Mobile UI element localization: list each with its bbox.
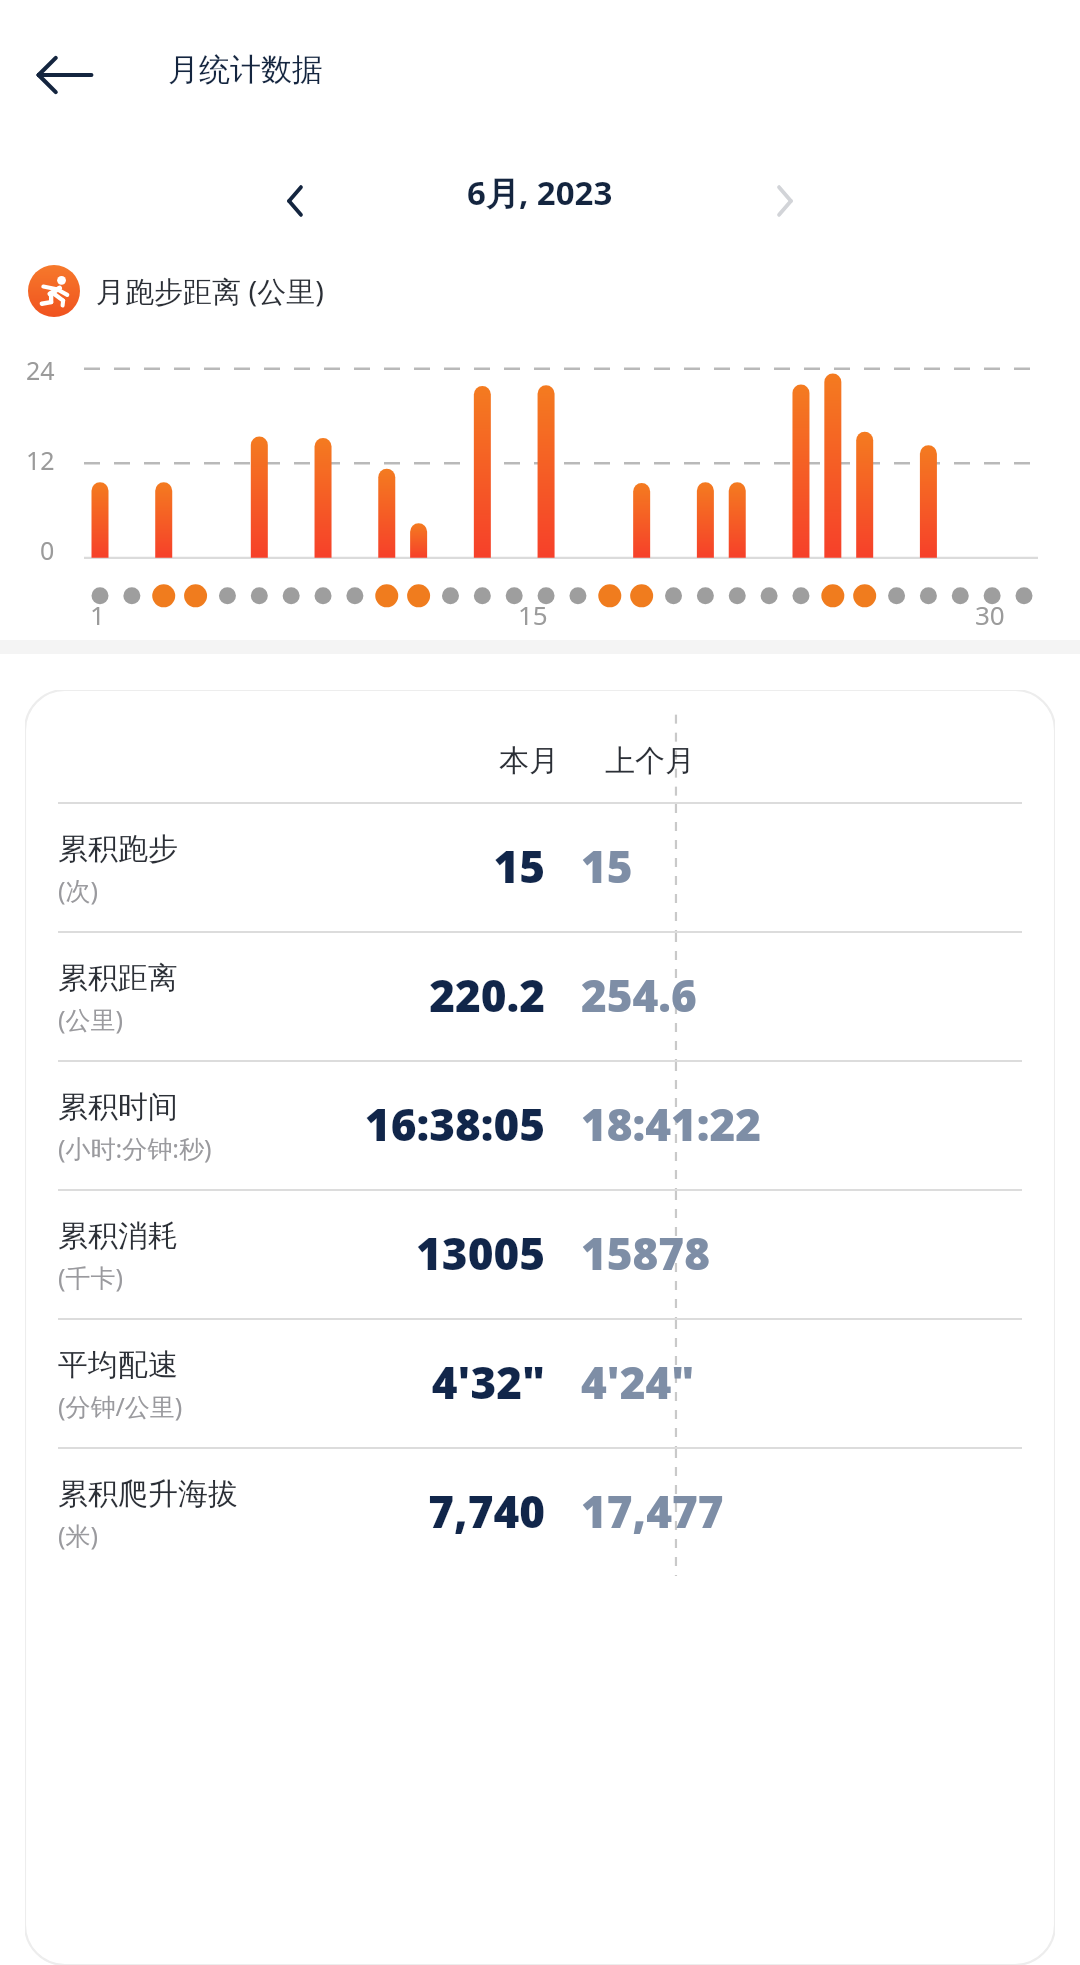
staticText: 1 [90,597,105,632]
staticText: 累积爬升海拔 [58,1475,238,1513]
staticText: 本月 [499,742,559,780]
staticText: 16:38:05 [364,1094,545,1154]
staticText: (千卡) [58,1260,124,1294]
staticText: 6月, 2023 [467,170,613,215]
staticText: (次) [58,873,99,907]
staticText: 4'24" [581,1352,695,1412]
staticText: 0 [40,533,55,567]
staticText: 4'32" [431,1352,545,1412]
staticText: 220.2 [429,965,545,1025]
button[interactable]: 累积时间 [25,1062,1055,1189]
staticText: 累积消耗 [58,1217,178,1255]
staticText: (米) [58,1518,99,1552]
staticText: 30 [975,597,1005,632]
staticText: (分钟/公里) [58,1389,183,1423]
button[interactable]: 累积距离 [25,933,1055,1060]
button[interactable]: 累积爬升海拔 [25,1449,1055,1576]
staticText: 7,740 [428,1481,545,1541]
staticText: (公里) [58,1002,124,1036]
staticText: 月统计数据 [168,50,323,89]
button[interactable]: 累积跑步 [25,804,1055,931]
staticText: 254.6 [581,965,697,1025]
staticText: 15 [581,836,633,896]
button[interactable]: Next month [752,168,818,234]
staticText: 13005 [416,1223,545,1283]
staticText: 15 [493,836,545,896]
staticText: 12 [26,443,55,477]
button[interactable]: 平均配速 [25,1320,1055,1447]
staticText: 15 [518,597,548,632]
staticText: 24 [26,353,55,387]
button[interactable]: 累积消耗 [25,1191,1055,1318]
staticText: (小时:分钟:秒) [58,1131,212,1165]
staticText: 上个月 [605,742,695,780]
button[interactable]: Back [32,42,98,108]
staticText: 月跑步距离 (公里) [96,271,324,311]
staticText: 累积跑步 [58,830,178,868]
staticText: 累积时间 [58,1088,178,1126]
staticText: 平均配速 [58,1346,178,1384]
staticText: 15878 [581,1223,710,1283]
staticText: 18:41:22 [581,1094,762,1154]
button[interactable]: Previous month [262,168,328,234]
staticText: 17,477 [581,1481,724,1541]
staticText: 累积距离 [58,959,178,997]
